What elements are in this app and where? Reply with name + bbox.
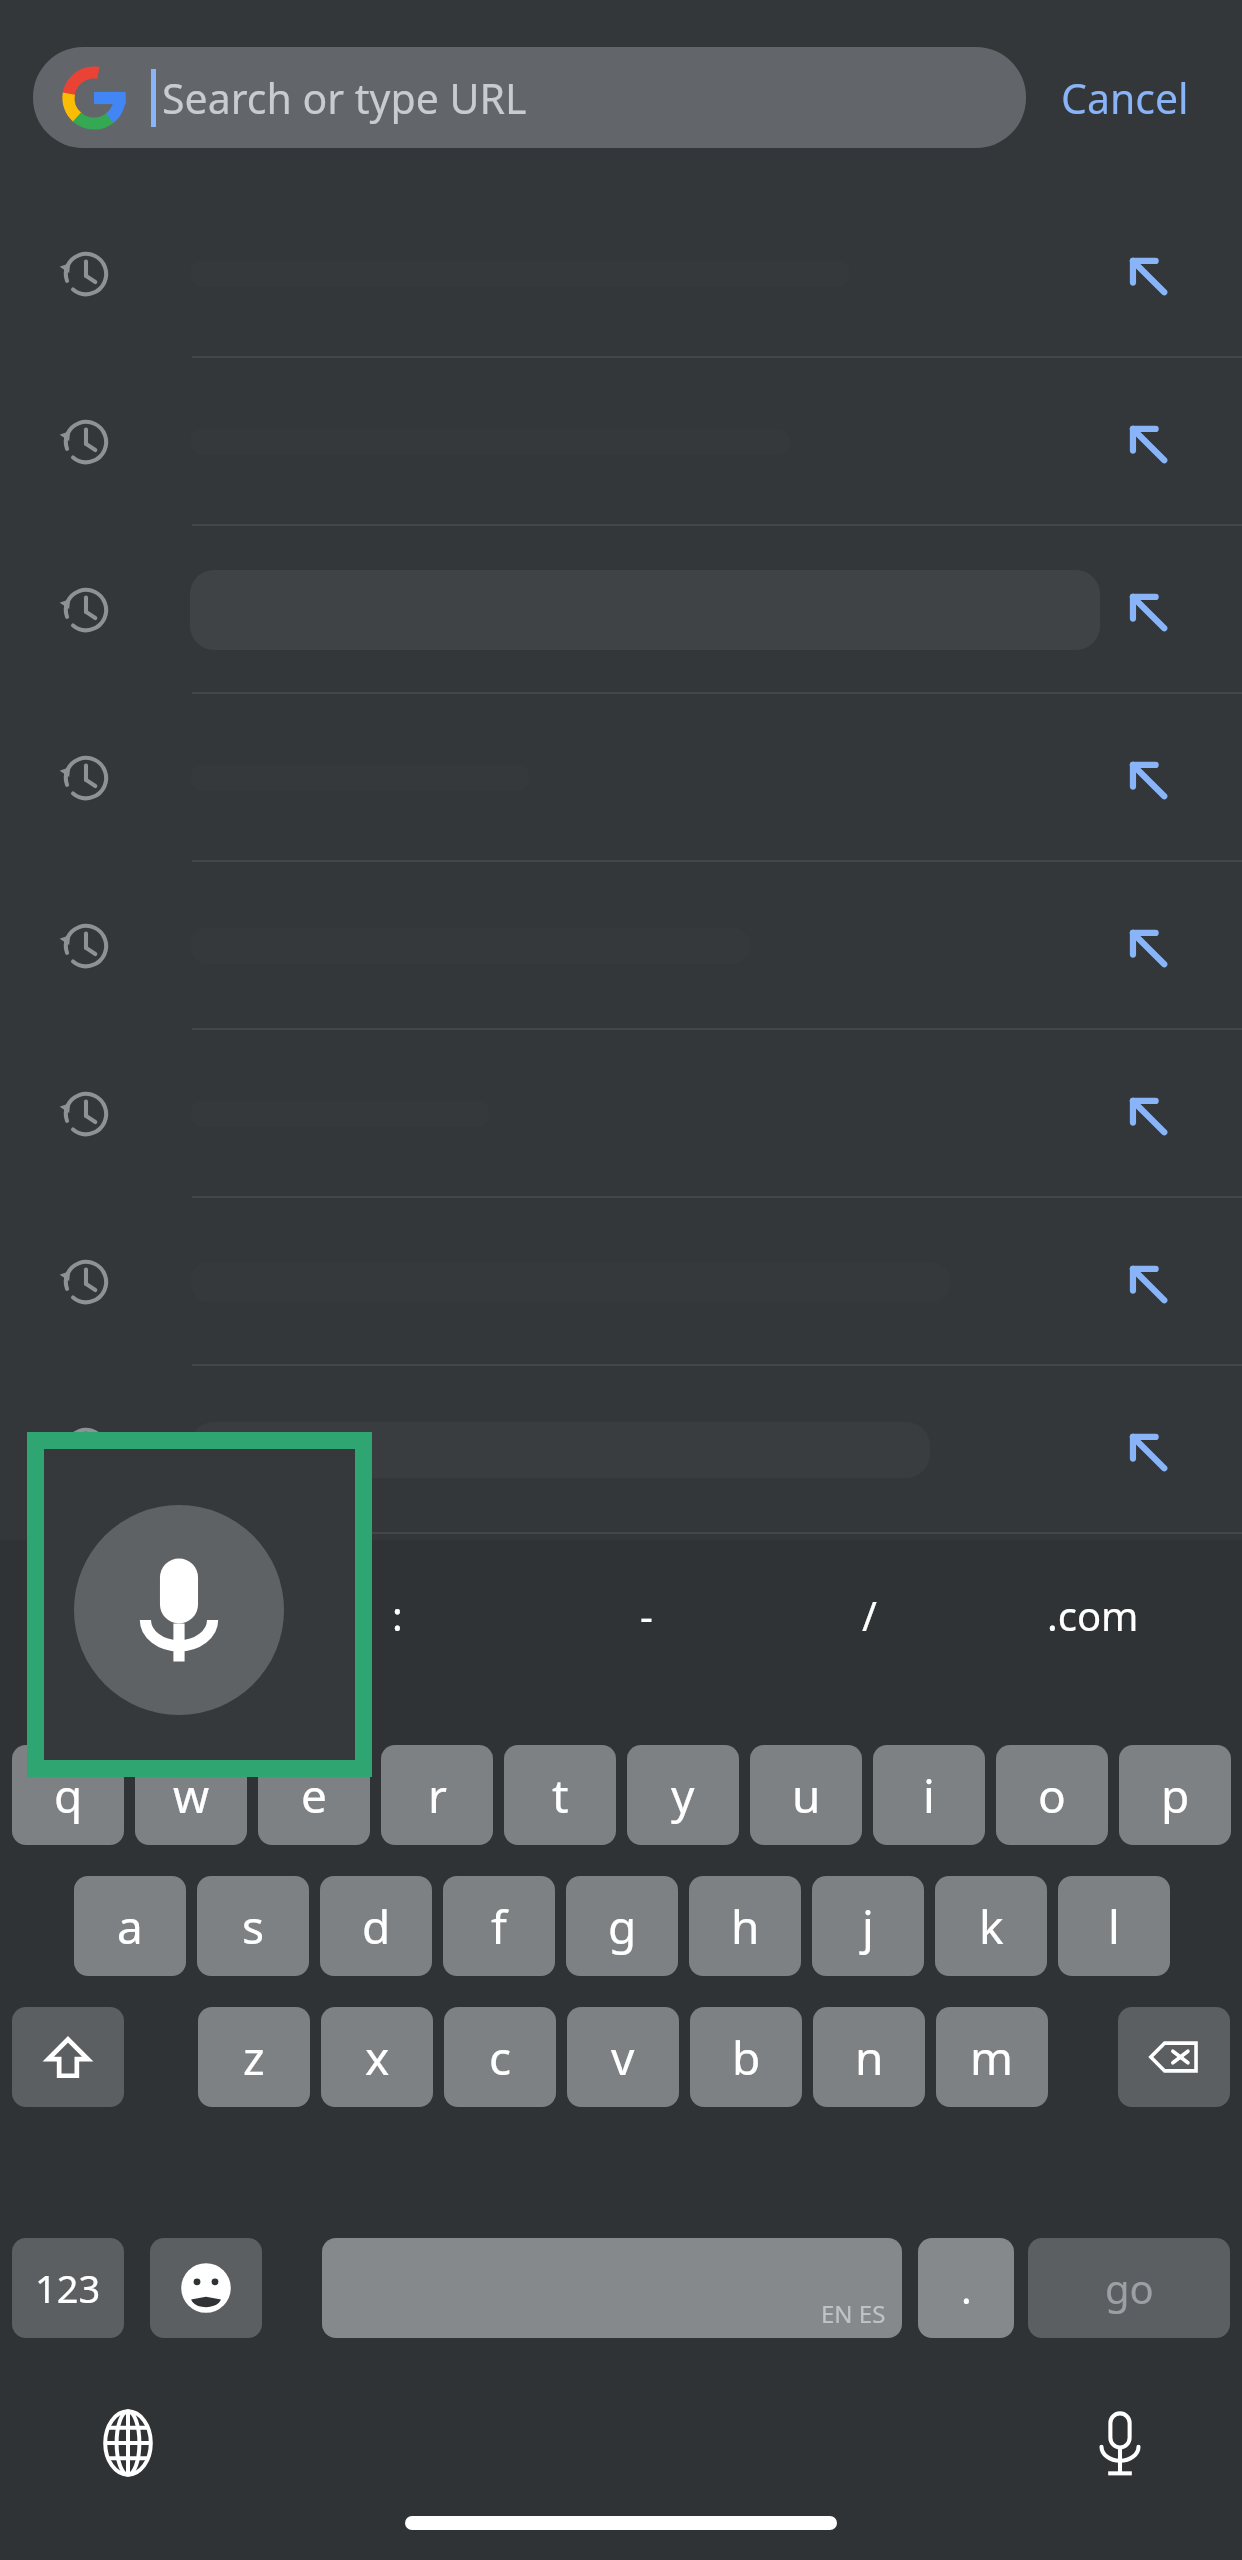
staticText: y: [671, 1764, 695, 1827]
button[interactable]: .: [918, 2238, 1014, 2338]
button[interactable]: m: [936, 2007, 1048, 2107]
button[interactable]: Append suggestion: [0, 1198, 1242, 1366]
staticText: r: [428, 1764, 447, 1827]
button[interactable]: k: [935, 1876, 1047, 1976]
staticText: EN ES: [821, 2297, 886, 2330]
staticText: f: [491, 1895, 507, 1958]
button[interactable]: 123: [12, 2238, 124, 2338]
button[interactable]: go: [1028, 2238, 1230, 2338]
staticText: i: [923, 1764, 935, 1827]
button[interactable]: Append suggestion: [1118, 918, 1176, 976]
staticText: o: [1038, 1764, 1066, 1827]
button[interactable]: Append suggestion: [1118, 1086, 1176, 1144]
button[interactable]: Voice search: [74, 1505, 284, 1715]
button[interactable]: Shift: [12, 2007, 124, 2107]
button[interactable]: o: [996, 1745, 1108, 1845]
button[interactable]: l: [1058, 1876, 1170, 1976]
button[interactable]: h: [689, 1876, 801, 1976]
button[interactable]: y: [627, 1745, 739, 1845]
staticText: k: [979, 1895, 1004, 1958]
button[interactable]: b: [690, 2007, 802, 2107]
button[interactable]: Append suggestion: [0, 190, 1242, 358]
button[interactable]: Append suggestion: [0, 526, 1242, 694]
button[interactable]: :: [307, 1560, 487, 1670]
staticText: l: [1108, 1895, 1120, 1958]
staticText: p: [1161, 1764, 1190, 1827]
button[interactable]: j: [812, 1876, 924, 1976]
button[interactable]: Space: [322, 2238, 902, 2338]
button[interactable]: r: [381, 1745, 493, 1845]
button[interactable]: Append suggestion: [1118, 414, 1176, 472]
button[interactable]: e: [258, 1745, 370, 1845]
staticText: d: [362, 1895, 391, 1958]
staticText: Search or type URL: [162, 70, 527, 126]
staticText: .: [961, 2261, 972, 2315]
staticText: m: [970, 2026, 1014, 2089]
button[interactable]: w: [135, 1745, 247, 1845]
button[interactable]: f: [443, 1876, 555, 1976]
staticText: t: [552, 1764, 569, 1827]
button[interactable]: Append suggestion: [1118, 750, 1176, 808]
button[interactable]: Change keyboard language: [80, 2395, 176, 2491]
button[interactable]: g: [566, 1876, 678, 1976]
staticText: j: [862, 1895, 874, 1958]
button[interactable]: Search or type URL: [33, 47, 1026, 148]
button[interactable]: .com: [1003, 1560, 1183, 1670]
button[interactable]: Emoji: [150, 2238, 262, 2338]
button[interactable]: -: [556, 1560, 736, 1670]
button[interactable]: Backspace: [1118, 2007, 1230, 2107]
staticText: z: [243, 2026, 265, 2089]
button[interactable]: Append suggestion: [1118, 1254, 1176, 1312]
button[interactable]: u: [750, 1745, 862, 1845]
button[interactable]: Cancel: [1040, 47, 1210, 148]
staticText: c: [489, 2026, 512, 2089]
button[interactable]: Voice input: [1072, 2395, 1168, 2491]
button[interactable]: q: [12, 1745, 124, 1845]
button[interactable]: x: [321, 2007, 433, 2107]
staticText: /: [862, 1588, 877, 1642]
staticText: :: [392, 1588, 403, 1642]
button[interactable]: a: [74, 1876, 186, 1976]
staticText: .com: [1047, 1588, 1139, 1642]
staticText: go: [1105, 2261, 1154, 2315]
button[interactable]: Append suggestion: [1118, 582, 1176, 640]
button[interactable]: t: [504, 1745, 616, 1845]
staticText: h: [731, 1895, 760, 1958]
button[interactable]: n: [813, 2007, 925, 2107]
button[interactable]: z: [198, 2007, 310, 2107]
staticText: w: [173, 1764, 210, 1827]
staticText: q: [54, 1764, 83, 1827]
staticText: u: [792, 1764, 821, 1827]
staticText: n: [855, 2026, 884, 2089]
staticText: Cancel: [1061, 70, 1189, 126]
staticText: s: [242, 1895, 265, 1958]
button[interactable]: Append suggestion: [0, 694, 1242, 862]
button[interactable]: i: [873, 1745, 985, 1845]
button[interactable]: Append suggestion: [0, 358, 1242, 526]
button[interactable]: Append suggestion: [1118, 1422, 1176, 1480]
button[interactable]: s: [197, 1876, 309, 1976]
button[interactable]: d: [320, 1876, 432, 1976]
button[interactable]: Append suggestion: [0, 1030, 1242, 1198]
button[interactable]: p: [1119, 1745, 1231, 1845]
button[interactable]: c: [444, 2007, 556, 2107]
button[interactable]: Append suggestion: [0, 1366, 1242, 1534]
button[interactable]: Append suggestion: [0, 862, 1242, 1030]
staticText: e: [301, 1764, 327, 1827]
button[interactable]: Append suggestion: [1118, 246, 1176, 304]
button[interactable]: /: [779, 1560, 959, 1670]
staticText: b: [732, 2026, 761, 2089]
button[interactable]: v: [567, 2007, 679, 2107]
staticText: 123: [35, 2262, 101, 2314]
staticText: -: [640, 1588, 653, 1642]
staticText: x: [365, 2026, 390, 2089]
staticText: a: [117, 1895, 143, 1958]
staticText: g: [608, 1895, 637, 1958]
staticText: v: [611, 2026, 635, 2089]
